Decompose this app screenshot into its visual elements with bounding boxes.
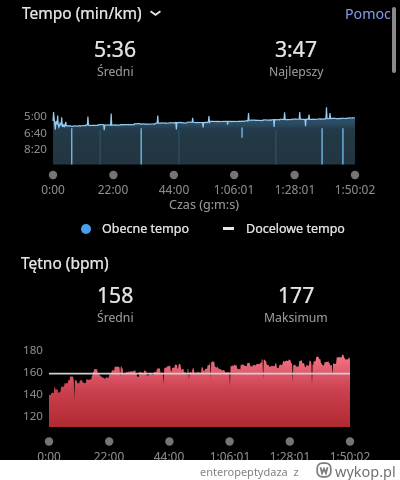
staticText: 8:20 bbox=[17, 141, 47, 157]
staticText: Tempo (min/km) bbox=[22, 2, 142, 23]
staticText: 177 bbox=[278, 280, 315, 309]
staticText: 1:06:01 bbox=[204, 448, 256, 464]
staticText: 22:00 bbox=[83, 448, 135, 464]
staticText: 158 bbox=[97, 280, 134, 309]
staticText: 120 bbox=[15, 408, 43, 424]
staticText: Średni bbox=[97, 63, 134, 80]
staticText: 180 bbox=[15, 342, 43, 358]
staticText: 1:50:02 bbox=[329, 181, 381, 197]
button[interactable]: Tempo (min/km) bbox=[22, 2, 162, 23]
staticText: 5:00 bbox=[17, 108, 47, 124]
staticText: 1:50:02 bbox=[324, 448, 376, 464]
staticText: Obecne tempo bbox=[102, 220, 190, 237]
staticText: 6:40 bbox=[17, 125, 47, 141]
staticText: 22:00 bbox=[87, 181, 139, 197]
staticText: 160 bbox=[15, 364, 43, 380]
staticText: Docelowe tempo bbox=[246, 220, 345, 237]
staticText: 1:28:01 bbox=[264, 448, 316, 464]
staticText: 140 bbox=[15, 386, 43, 402]
staticText: 5:36 bbox=[94, 34, 137, 63]
staticText: Najlepszy bbox=[269, 63, 324, 80]
staticText: Maksimum bbox=[264, 309, 328, 326]
staticText: 0:00 bbox=[27, 181, 79, 197]
staticText: 0:00 bbox=[23, 448, 75, 464]
staticText: 3:47 bbox=[275, 34, 318, 63]
staticText: Pomoc bbox=[345, 4, 391, 23]
staticText: Średni bbox=[97, 309, 134, 326]
staticText: Czas (g:m:s) bbox=[150, 196, 258, 213]
staticText: wykop.pl bbox=[335, 461, 396, 480]
button[interactable]: Pomoc bbox=[342, 3, 394, 24]
staticText: 44:00 bbox=[148, 181, 200, 197]
staticText: 1:28:01 bbox=[269, 181, 321, 197]
staticText: enteropeptydaza z bbox=[200, 464, 299, 479]
staticText: Tętno (bpm) bbox=[21, 252, 109, 273]
staticText: 44:00 bbox=[143, 448, 195, 464]
staticText: 1:06:01 bbox=[208, 181, 260, 197]
